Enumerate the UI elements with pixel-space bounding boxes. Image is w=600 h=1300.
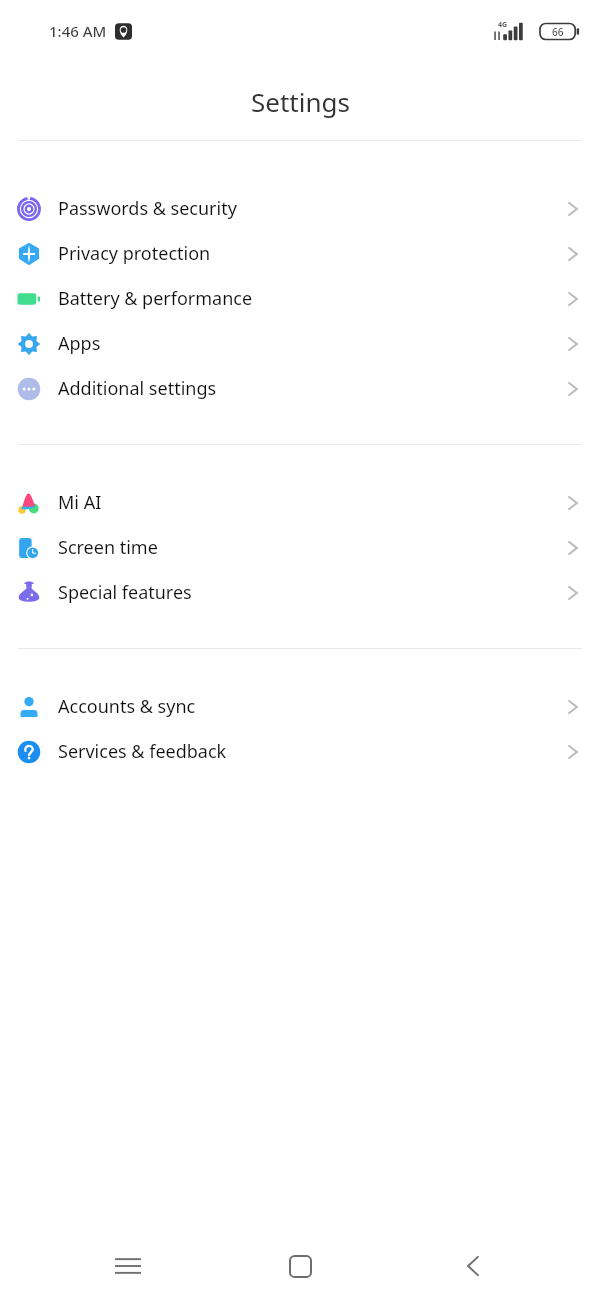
button[interactable]: Services & feedback [0,729,600,774]
button[interactable]: Recent apps [83,1237,173,1295]
staticText: Apps [58,331,101,356]
button[interactable]: Back [428,1237,518,1295]
staticText: 1:46 AM [49,21,107,41]
button[interactable]: Apps [0,321,600,366]
button[interactable]: Special features [0,570,600,615]
staticText: Settings [251,84,350,119]
button[interactable]: Passwords & security [0,186,600,231]
button[interactable]: Privacy protection [0,231,600,276]
staticText: 66 [552,25,564,39]
staticText: Privacy protection [58,241,211,266]
button[interactable]: Home [255,1237,345,1295]
staticText: Additional settings [58,376,217,401]
staticText: Mi AI [58,490,102,515]
staticText: Screen time [58,535,158,560]
staticText: Special features [58,580,192,605]
staticText: Passwords & security [58,196,237,221]
staticText: Accounts & sync [58,694,196,719]
button[interactable]: Accounts & sync [0,684,600,729]
button[interactable]: Mi AI [0,480,600,525]
button[interactable]: Additional settings [0,366,600,411]
button[interactable]: Screen time [0,525,600,570]
staticText: 4G [498,20,508,30]
staticText: Battery & performance [58,286,253,311]
button[interactable]: Battery & performance [0,276,600,321]
staticText: Services & feedback [58,739,227,764]
